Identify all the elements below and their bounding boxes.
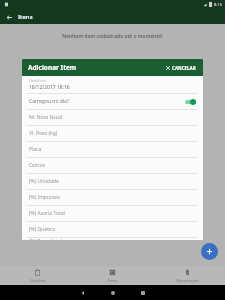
button[interactable]: Nr. Nota Fiscal [22, 110, 203, 125]
staticText: (%) Avaria Total [29, 210, 65, 217]
button[interactable]: Itens [75, 266, 150, 285]
button[interactable]: Add item [201, 243, 218, 260]
staticText: Vl. Peso (kg) [29, 130, 58, 137]
button[interactable]: (%) Avaria Total [22, 206, 203, 221]
staticText: Itens [108, 278, 117, 283]
staticText: Detalhes [30, 278, 46, 283]
button[interactable]: (%) Umidade [22, 174, 203, 189]
staticText: (%) Quebra [29, 226, 56, 233]
staticText: Observações [176, 278, 199, 283]
button[interactable]: Home [106, 286, 120, 300]
button[interactable]: Outros [22, 158, 203, 173]
button[interactable]: (%) Esverdeado [22, 238, 203, 240]
staticText: (%) Esverdeado [29, 238, 65, 240]
button[interactable]: Carregou no dia? [22, 94, 203, 109]
button[interactable]: Vl. Peso (kg) [22, 126, 203, 141]
staticText: Data/Hora [29, 78, 47, 83]
button[interactable]: Recents [136, 286, 150, 300]
staticText: CANCELAR [172, 65, 196, 71]
staticText: (%) Umidade [29, 178, 59, 185]
staticText: Placa [29, 146, 42, 153]
staticText: Nenhum item cadastrado até o momento! [62, 33, 163, 40]
button[interactable]: Back [76, 286, 90, 300]
button[interactable]: Placa [22, 142, 203, 157]
staticText: 18/12/2017 18:16 [29, 84, 70, 91]
button[interactable]: Data/Hora [22, 76, 203, 93]
staticText: Itens [18, 13, 33, 21]
staticText: (%) Impureza [29, 194, 60, 201]
button[interactable]: (%) Quebra [22, 222, 203, 237]
staticText: Adicionar Item [28, 63, 77, 72]
button[interactable]: Detalhes [0, 266, 75, 285]
button[interactable]: CANCELAR [165, 63, 197, 73]
button[interactable]: Carregou no dia toggle [185, 99, 196, 105]
button[interactable]: Back [3, 11, 15, 23]
staticText: Outros [29, 162, 46, 169]
staticText: Carregou no dia? [29, 98, 70, 105]
button[interactable]: (%) Impureza [22, 190, 203, 205]
staticText: 8:16 [214, 2, 222, 7]
button[interactable]: Observações [150, 266, 225, 285]
staticText: Nr. Nota Fiscal [29, 114, 63, 121]
